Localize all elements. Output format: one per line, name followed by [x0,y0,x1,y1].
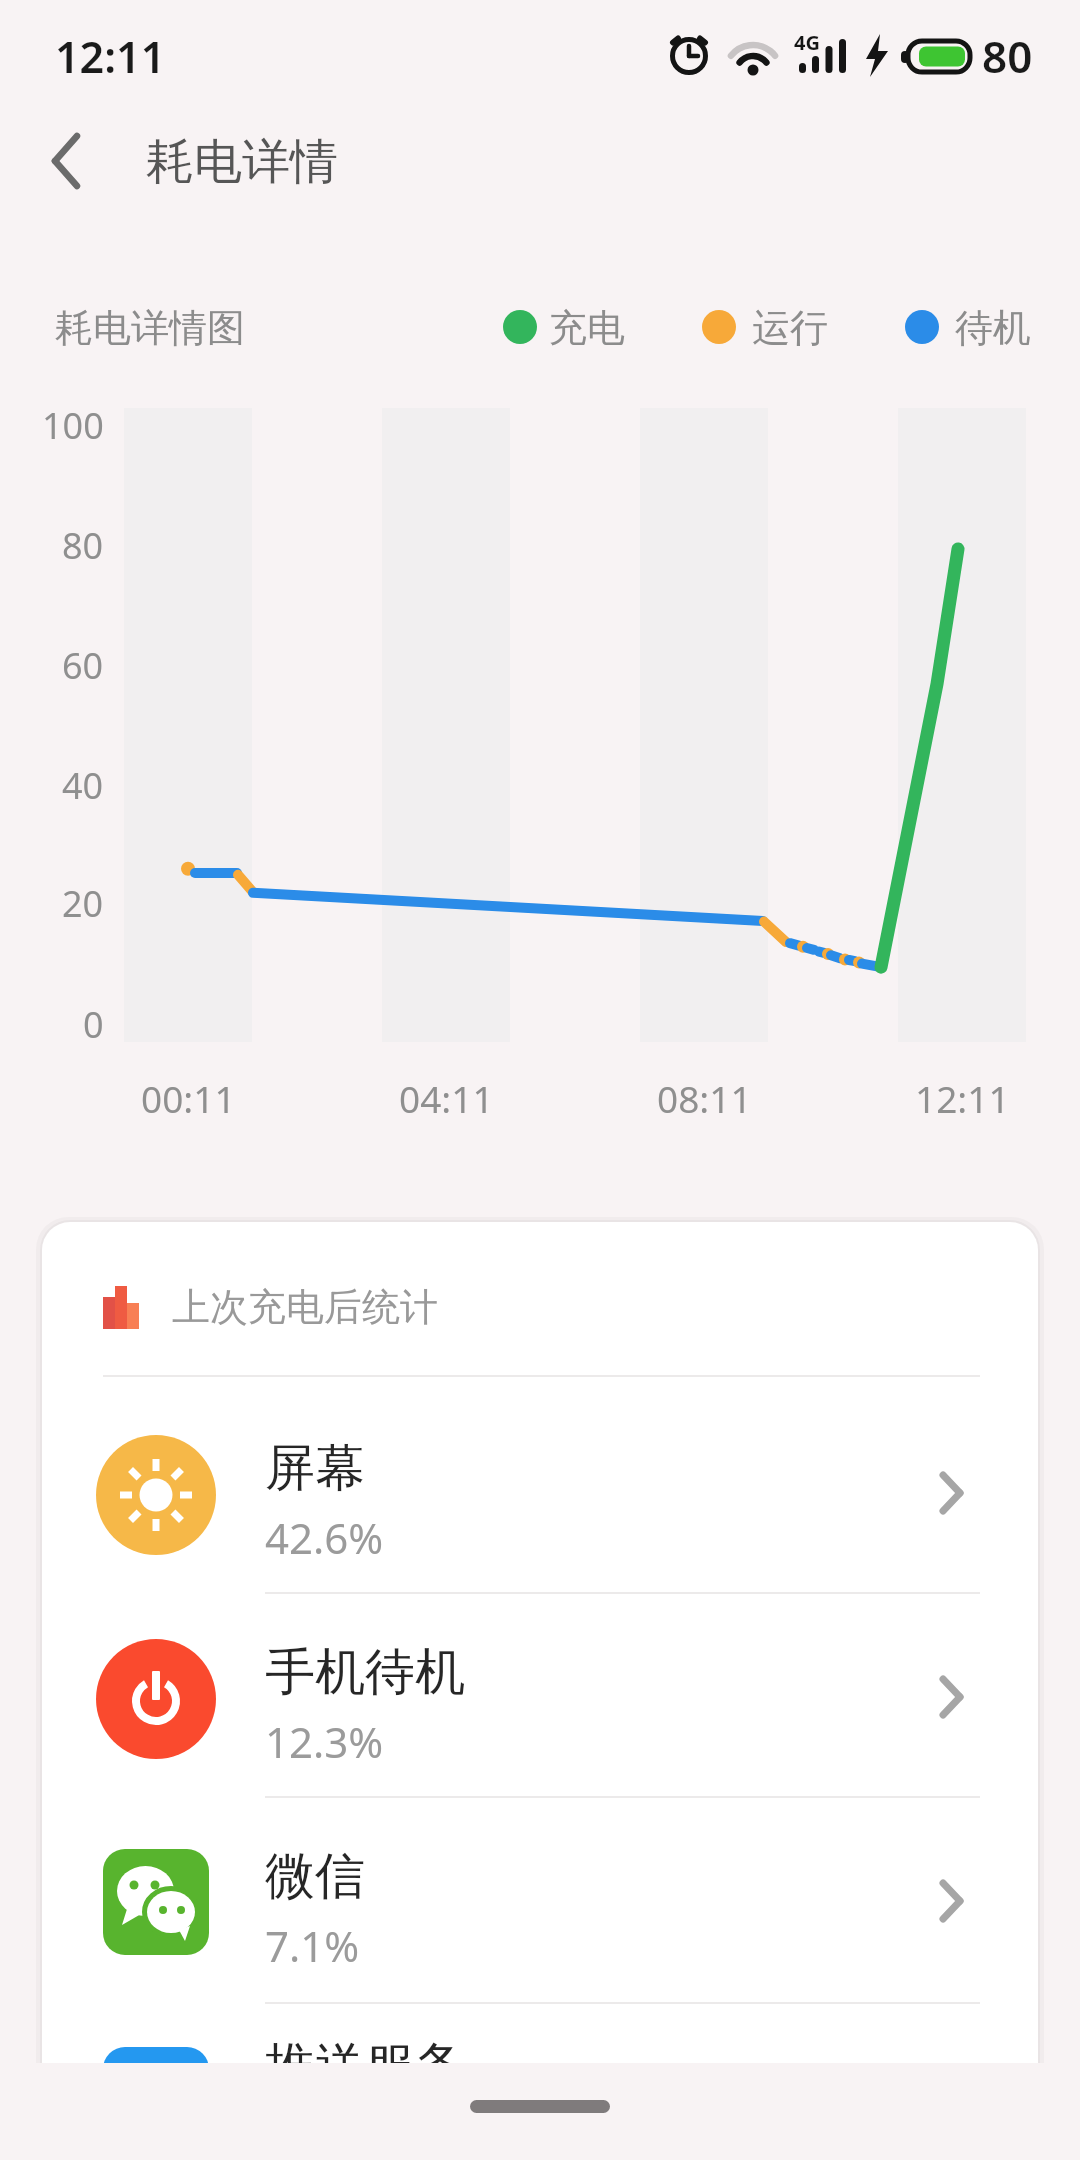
button[interactable]: 屏幕 [42,1393,1038,1593]
staticText: 上次充电后统计 [172,1283,438,1331]
staticText: 推送服务 [265,2035,465,2095]
staticText: 12:11 [915,1073,1010,1123]
button[interactable]: 微信 [42,1801,1038,2001]
staticText: 20 [62,879,104,928]
staticText: 微信 [265,1845,365,1905]
staticText: 4G [794,29,820,56]
staticText: 80 [982,26,1033,86]
staticText: 手机待机 [265,1641,465,1701]
staticText: 42.6% [265,1509,384,1565]
staticText: 耗电详情 [146,132,338,192]
staticText: 0 [83,1000,104,1049]
staticText: 待机 [955,304,1031,352]
staticText: 7.1% [265,1917,360,1973]
button[interactable]: 推送服务 [42,2005,1038,2160]
button[interactable] [470,2100,610,2113]
staticText: 充电 [549,304,625,352]
button[interactable]: 手机待机 [42,1597,1038,1797]
staticText: 耗电详情图 [55,304,245,352]
staticText: 60 [62,641,104,690]
staticText: 12:11 [55,27,166,86]
button[interactable] [30,130,105,195]
staticText: 100 [42,401,104,450]
staticText: 80 [62,521,104,570]
staticText: 40 [62,761,104,810]
staticText: 00:11 [141,1073,236,1123]
staticText: 04:11 [399,1073,494,1123]
staticText: 08:11 [657,1073,752,1123]
staticText: 运行 [752,304,828,352]
staticText: 屏幕 [265,1437,365,1497]
staticText: 12.3% [265,1713,384,1769]
